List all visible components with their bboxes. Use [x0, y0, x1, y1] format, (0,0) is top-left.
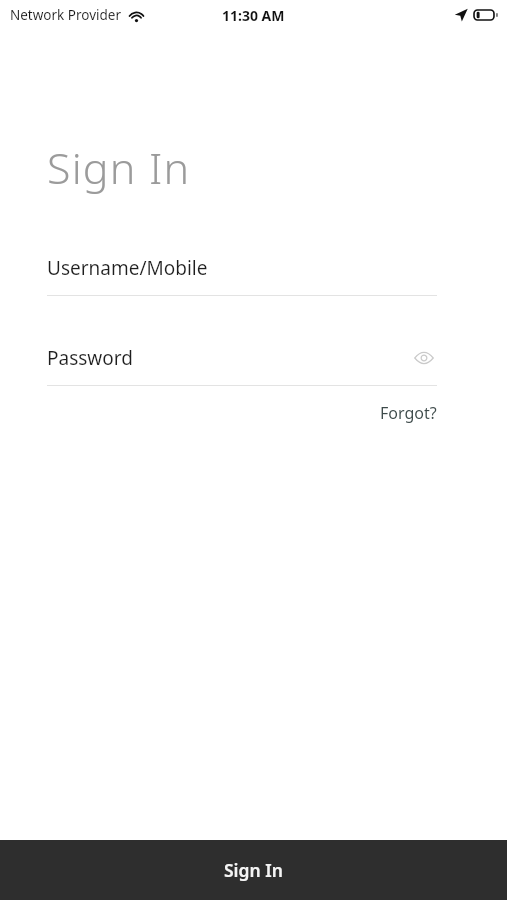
staticText: Sign In — [224, 858, 283, 882]
button[interactable]: Forgot? — [366, 394, 507, 432]
button[interactable]: Sign In — [0, 840, 507, 900]
staticText: 11:30 AM — [222, 6, 285, 25]
staticText: Username/Mobile — [47, 255, 208, 281]
button[interactable]: Password — [0, 345, 507, 371]
staticText: Forgot? — [380, 402, 437, 424]
staticText: Network Provider — [10, 6, 122, 24]
other: Location — [454, 8, 468, 22]
button[interactable]: Show password — [411, 345, 437, 371]
staticText: Password — [47, 345, 133, 371]
staticText: Sign In — [47, 138, 191, 197]
button[interactable]: Username/Mobile — [0, 255, 507, 281]
